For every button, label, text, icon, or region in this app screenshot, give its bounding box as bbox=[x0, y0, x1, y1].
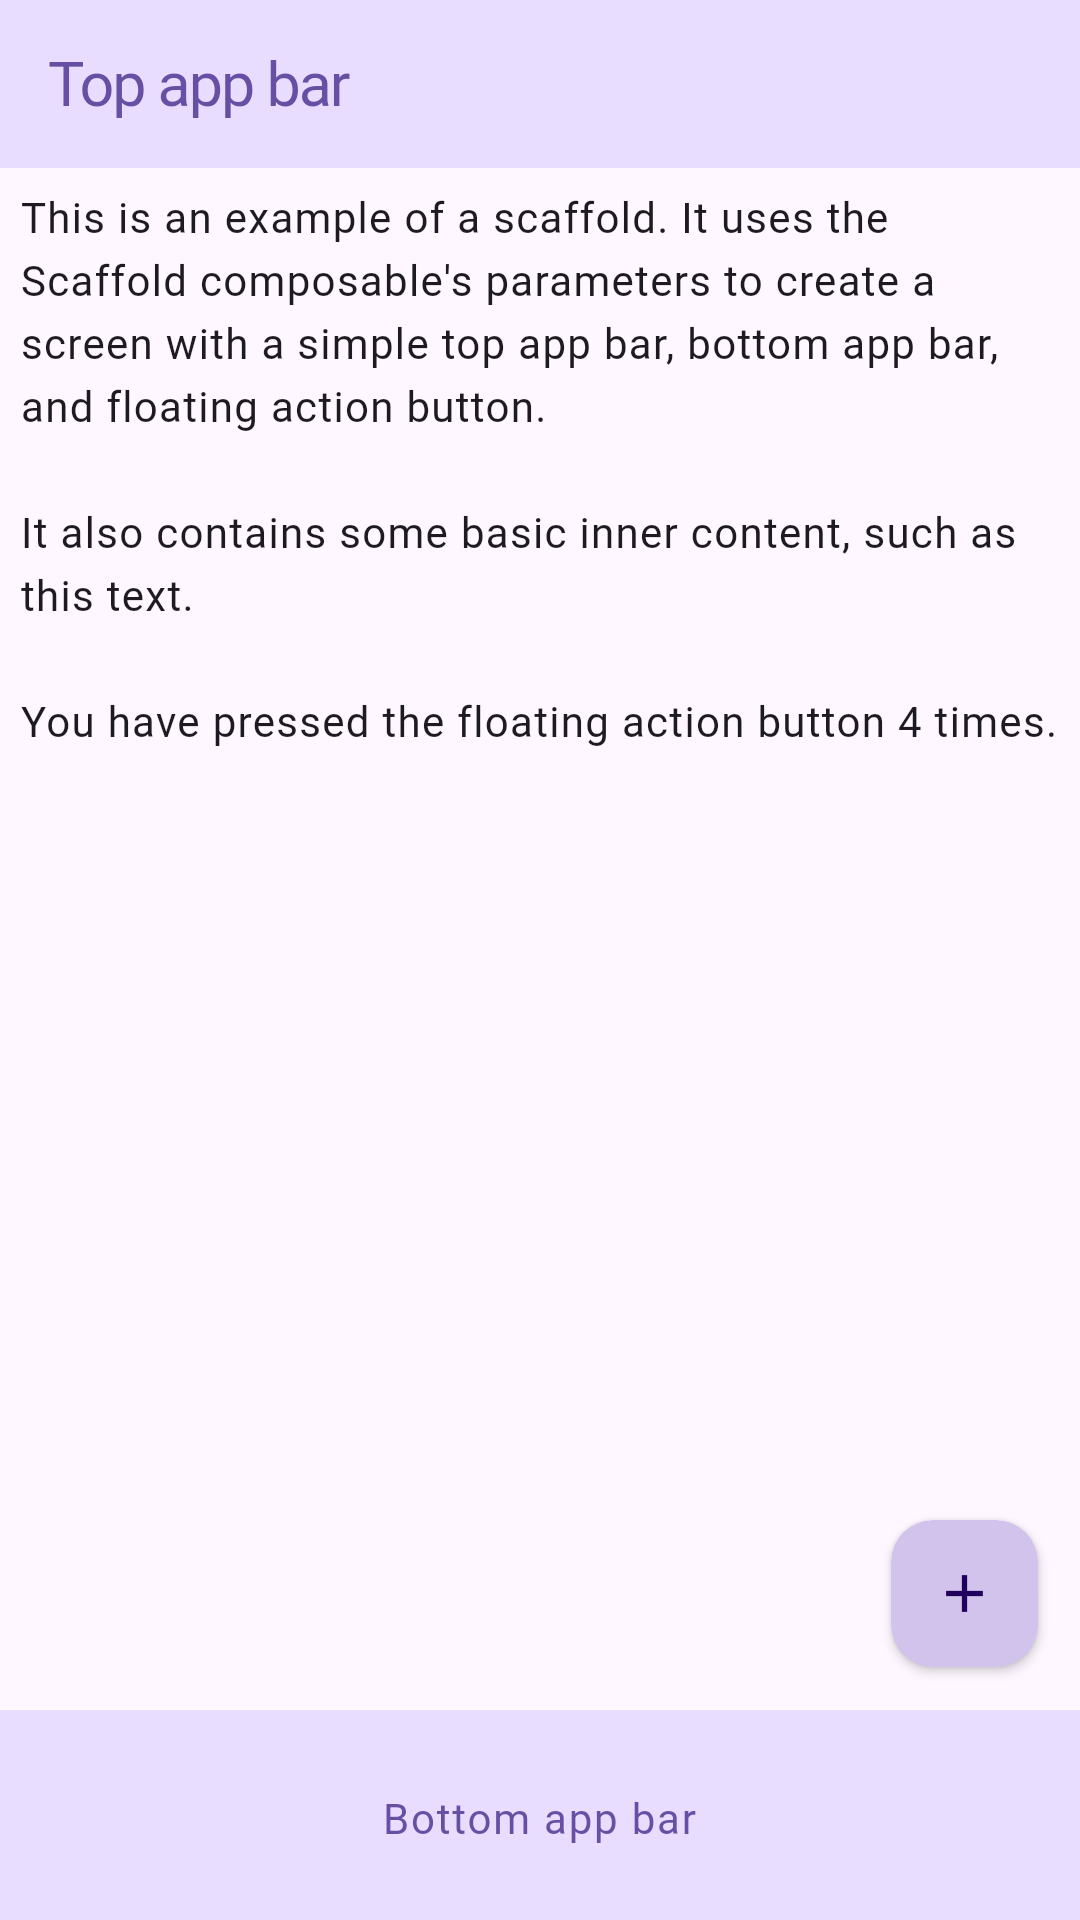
staticText: Bottom app bar bbox=[383, 1795, 698, 1844]
staticText: Top app bar bbox=[48, 49, 349, 120]
button[interactable] bbox=[891, 1520, 1038, 1667]
staticText: This is an example of a scaffold. It use… bbox=[21, 194, 1059, 747]
